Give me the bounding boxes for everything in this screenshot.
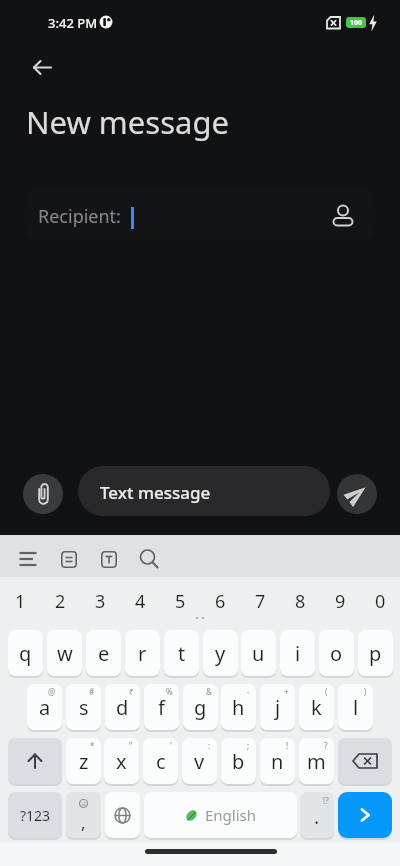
button[interactable] — [8, 738, 62, 784]
staticText: & — [206, 686, 212, 697]
staticText: v — [194, 748, 205, 775]
staticText: % — [166, 686, 173, 697]
staticText: # — [89, 686, 95, 697]
button[interactable]: !? — [300, 792, 334, 838]
button[interactable]: g — [183, 684, 218, 730]
staticText: e — [98, 640, 110, 667]
staticText: r — [138, 640, 147, 667]
button[interactable]: 8 — [280, 579, 320, 623]
staticText: d — [116, 694, 129, 721]
staticText: + — [284, 686, 289, 697]
button[interactable]: ?123 — [8, 792, 62, 838]
button[interactable]: d — [105, 684, 140, 730]
button[interactable]: k — [299, 684, 334, 730]
staticText: ' — [170, 740, 172, 751]
button[interactable]: f — [144, 684, 179, 730]
staticText: s — [79, 694, 89, 721]
button[interactable] — [23, 474, 63, 514]
button[interactable]: y — [203, 630, 238, 676]
button[interactable] — [338, 738, 392, 784]
staticText: ; — [247, 740, 250, 751]
button[interactable]: 5 — [160, 579, 200, 623]
staticText: @ — [48, 686, 56, 697]
button[interactable]: q — [8, 630, 43, 676]
button[interactable]: c — [143, 738, 178, 784]
staticText: c — [156, 748, 166, 775]
button[interactable]: 7 — [240, 579, 280, 623]
button[interactable]: English — [144, 792, 297, 838]
button[interactable] — [105, 792, 140, 838]
staticText: h — [232, 694, 245, 721]
button[interactable]: Recipient: — [25, 190, 375, 240]
button[interactable]: i — [280, 630, 315, 676]
staticText: ₹ — [129, 686, 134, 697]
button[interactable]: w — [47, 630, 82, 676]
button[interactable]: n — [260, 738, 295, 784]
staticText: l — [353, 694, 359, 721]
staticText: ) — [364, 686, 367, 697]
staticText: 0 — [375, 589, 386, 614]
staticText: - — [247, 686, 250, 697]
button[interactable]: 9 — [320, 579, 360, 623]
staticText: !? — [323, 795, 329, 806]
button[interactable] — [135, 545, 163, 573]
button[interactable]: h — [221, 684, 256, 730]
button[interactable]: 3 — [80, 579, 120, 623]
button[interactable]: j — [260, 684, 295, 730]
button[interactable]: s — [66, 684, 101, 730]
staticText: 3 — [95, 589, 106, 614]
staticText: ! — [286, 740, 289, 751]
button[interactable]: 1 — [0, 579, 40, 623]
staticText: q — [19, 640, 32, 667]
button[interactable]: l — [338, 684, 373, 730]
staticText: . — [314, 804, 320, 830]
staticText: 1 — [15, 589, 26, 614]
button[interactable] — [14, 545, 42, 573]
button[interactable]: v — [182, 738, 217, 784]
button[interactable] — [338, 792, 392, 838]
staticText: b — [232, 748, 245, 775]
staticText: i — [295, 640, 301, 667]
button[interactable]: x — [104, 738, 139, 784]
staticText: ( — [325, 686, 328, 697]
staticText: 3:42 PM — [48, 14, 98, 32]
button[interactable]: b — [221, 738, 256, 784]
button[interactable] — [95, 545, 123, 573]
button[interactable]: r — [125, 630, 160, 676]
staticText: z — [79, 748, 89, 775]
staticText: * — [90, 740, 95, 751]
button[interactable]: Text message — [78, 466, 330, 516]
staticText: ?123 — [20, 806, 51, 825]
staticText: n — [271, 748, 284, 775]
button[interactable]: o — [319, 630, 354, 676]
button[interactable]: t — [164, 630, 199, 676]
button[interactable]: 4 — [120, 579, 160, 623]
button[interactable]: 0 — [360, 579, 400, 623]
button[interactable] — [337, 474, 377, 514]
staticText: 9 — [335, 589, 346, 614]
staticText: 8 — [295, 589, 306, 614]
button[interactable]: , — [66, 792, 101, 838]
staticText: 7 — [255, 589, 266, 614]
button[interactable] — [55, 545, 83, 573]
button[interactable] — [24, 49, 60, 85]
staticText: English — [205, 805, 257, 825]
staticText: t — [178, 640, 186, 667]
button[interactable]: p — [358, 630, 393, 676]
staticText: p — [369, 640, 382, 667]
button[interactable]: a — [27, 684, 62, 730]
button[interactable]: m — [299, 738, 334, 784]
staticText: ? — [324, 740, 328, 751]
button[interactable]: e — [86, 630, 121, 676]
staticText: " — [129, 740, 133, 751]
staticText: y — [215, 640, 226, 667]
staticText: : — [208, 740, 211, 751]
button[interactable]: 2 — [40, 579, 80, 623]
staticText: j — [275, 694, 281, 721]
button[interactable]: z — [66, 738, 101, 784]
staticText: New message — [26, 101, 229, 143]
button[interactable]: u — [241, 630, 276, 676]
button[interactable]: 6 — [200, 579, 240, 623]
staticText: o — [330, 640, 343, 667]
staticText: u — [252, 640, 265, 667]
